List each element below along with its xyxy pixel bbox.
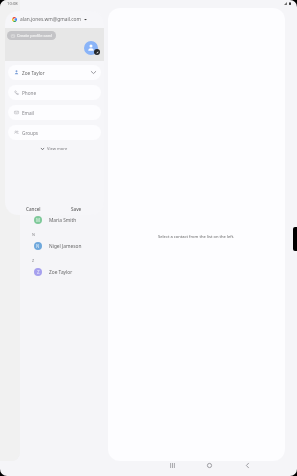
staticText: 10:08 [7,1,18,7]
staticText: Cancel [26,206,41,212]
button[interactable]: Email [8,105,101,120]
button[interactable]: Create profile card [7,31,56,40]
button[interactable]: alan.jones.wm@gmail.com [5,11,104,28]
staticText: View more [47,146,68,152]
staticText: Zoe Taylor [22,70,45,76]
staticText: Create profile card [17,33,52,38]
button[interactable]: Back [240,458,254,472]
staticText: Z [37,269,40,275]
staticText: Save [71,206,82,212]
staticText: Maria Smith [49,217,77,224]
staticText: Zoe Taylor [49,269,73,276]
button[interactable]: Recents [165,458,179,472]
staticText: Z [32,258,35,263]
button[interactable]: N [20,236,108,256]
staticText: N [36,243,40,249]
staticText: N [32,232,35,237]
button[interactable]: Phone [8,85,101,100]
staticText: Phone [22,90,37,96]
other: Edit photo [94,49,100,55]
staticText: Select a contact from the list on the le… [158,234,235,240]
button[interactable]: Home [202,458,216,472]
button[interactable]: Groups [8,125,101,140]
button[interactable]: Zoe Taylor [8,65,101,80]
staticText: Groups [22,130,39,136]
button[interactable]: Save [68,202,85,215]
button[interactable]: View more [5,143,104,155]
button[interactable]: Z [20,262,108,282]
staticText: M [36,217,40,223]
staticText: alan.jones.wm@gmail.com [20,16,81,23]
button[interactable]: Change profile photo [84,41,98,55]
button[interactable]: M [20,210,108,230]
staticText: Nigel Jameson [49,243,82,250]
staticText: Email [22,110,35,116]
button[interactable]: Cancel [23,202,44,215]
